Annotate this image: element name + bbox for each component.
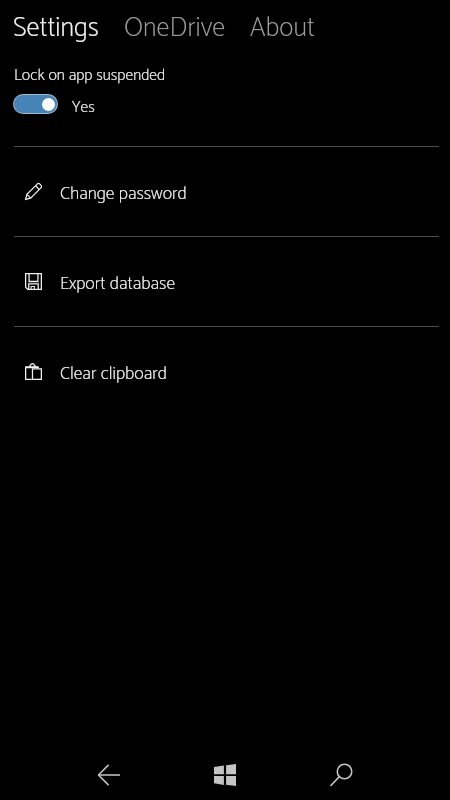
staticText: OneDrive bbox=[124, 6, 226, 50]
staticText: Settings bbox=[13, 6, 99, 50]
button[interactable]: Yes bbox=[13, 91, 95, 117]
staticText: Export database bbox=[60, 269, 176, 299]
staticText: Yes bbox=[72, 94, 95, 120]
staticText: Change password bbox=[60, 179, 187, 209]
button[interactable]: Home bbox=[195, 745, 255, 800]
button[interactable]: Back bbox=[79, 745, 139, 800]
button[interactable]: Export database bbox=[0, 237, 450, 326]
button[interactable]: OneDrive bbox=[124, 6, 226, 50]
button[interactable]: Search bbox=[311, 745, 371, 800]
staticText: About bbox=[250, 6, 315, 50]
staticText: Lock on app suspended bbox=[14, 62, 166, 88]
button[interactable]: Settings bbox=[13, 6, 99, 50]
button[interactable]: Change password bbox=[0, 147, 450, 236]
staticText: Clear clipboard bbox=[60, 359, 167, 389]
button[interactable]: Clear clipboard bbox=[0, 327, 450, 416]
button[interactable]: About bbox=[250, 6, 315, 50]
